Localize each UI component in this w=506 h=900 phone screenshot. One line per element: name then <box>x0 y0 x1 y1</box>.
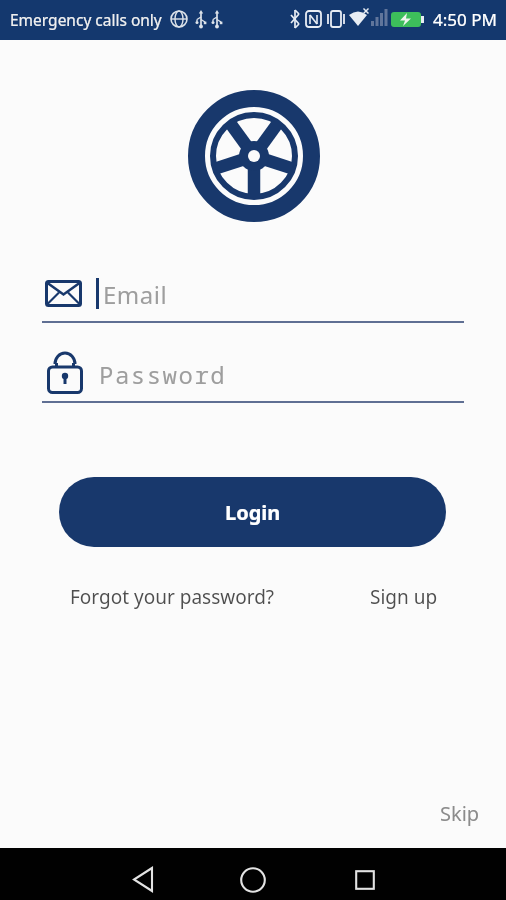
staticText: Login <box>225 499 281 526</box>
button[interactable] <box>335 859 395 900</box>
staticText: Email <box>103 278 168 311</box>
button[interactable]: Login <box>59 477 446 547</box>
button[interactable]: Sign up <box>360 574 448 620</box>
staticText: Emergency calls only <box>10 9 162 30</box>
staticText: Forgot your password? <box>70 584 275 610</box>
staticText: Skip <box>440 800 480 827</box>
button[interactable]: Skip <box>430 790 490 837</box>
staticText: Password <box>99 358 227 391</box>
button[interactable] <box>223 859 283 900</box>
button[interactable] <box>113 859 173 900</box>
staticText: Sign up <box>370 584 438 610</box>
button[interactable]: Forgot your password? <box>60 574 285 620</box>
staticText: 4:50 PM <box>433 8 497 31</box>
